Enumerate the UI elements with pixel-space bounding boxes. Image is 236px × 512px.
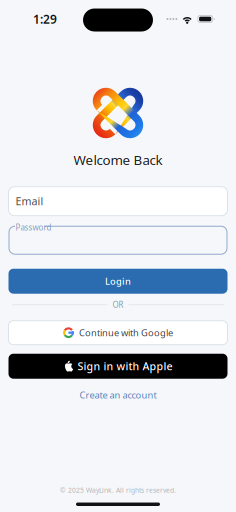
staticText: Create an account [79,389,156,401]
staticText: Password [15,222,51,233]
staticText: Login [105,275,131,287]
staticText: Email [15,194,43,208]
button[interactable]: Continue with Google [8,321,227,345]
staticText: OR [112,299,123,310]
staticText: Sign in with Apple [78,359,173,373]
button[interactable]: Create an account [73,386,162,404]
staticText: Welcome Back [73,151,162,169]
staticText: 1:29 [33,11,57,27]
staticText: © 2025 WayLink. All rights reserved. [60,486,176,494]
button[interactable]: Login [8,269,227,294]
button[interactable]: Sign in with Apple [8,354,227,379]
staticText: Continue with Google [79,326,173,339]
